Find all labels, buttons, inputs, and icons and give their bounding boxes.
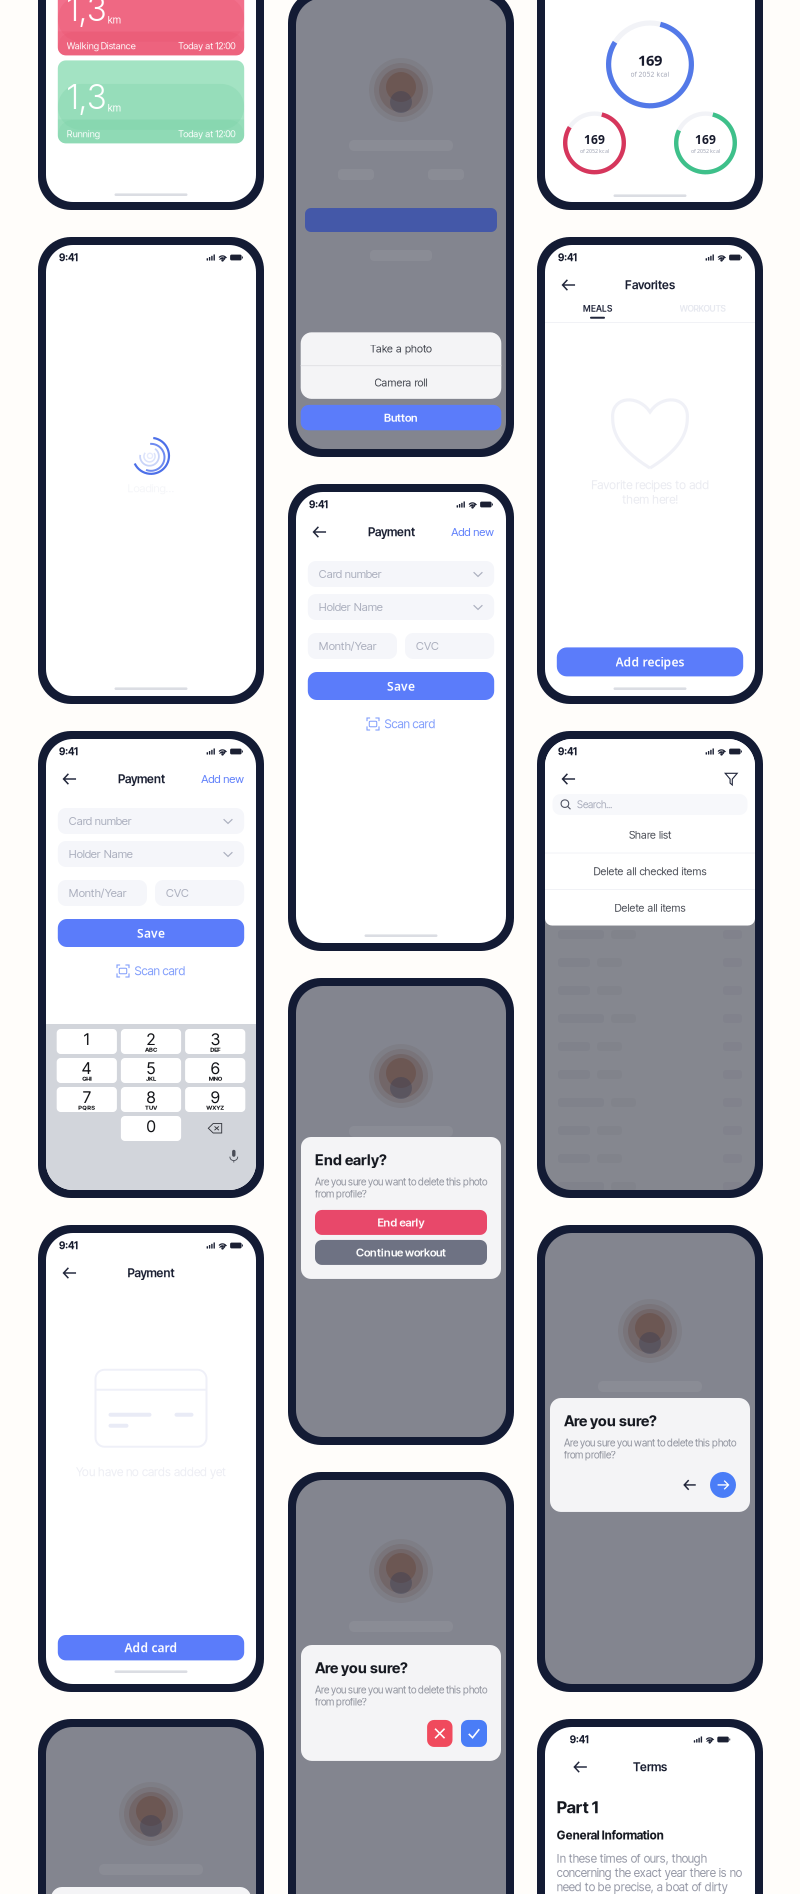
staticText: Payment (127, 1266, 174, 1280)
button[interactable]: MEALS (545, 300, 650, 322)
staticText: Add new (451, 525, 494, 539)
staticText: MNO (209, 1075, 222, 1082)
staticText: Terms (633, 1760, 667, 1774)
staticText: of 2052 kcal (580, 147, 609, 154)
button[interactable]: Back (58, 768, 82, 790)
staticText: Favorite recipes to add them here! (591, 478, 709, 507)
staticText: Card number (69, 814, 132, 828)
staticText: Add card (124, 1640, 177, 1656)
button[interactable]: Add recipes (557, 647, 743, 676)
button[interactable]: 6 (185, 1058, 245, 1083)
staticText: Share list (629, 828, 671, 841)
button[interactable]: Scan card (116, 954, 185, 980)
button[interactable]: Filter (719, 768, 743, 790)
staticText: km (108, 102, 121, 114)
button[interactable]: Save (58, 919, 244, 947)
staticText: Add new (201, 772, 244, 786)
button[interactable]: Add card (58, 1635, 244, 1660)
button[interactable]: Continue (710, 1472, 736, 1498)
button[interactable]: 8 (121, 1087, 181, 1112)
button[interactable]: Back (557, 274, 581, 296)
button[interactable]: Cancel (427, 1720, 452, 1747)
staticText: Today at 12:00 (178, 40, 235, 51)
button[interactable]: Continue workout (315, 1240, 487, 1265)
staticText: Delete all checked items (593, 865, 706, 878)
button[interactable]: Share list (545, 817, 755, 852)
button[interactable]: 2 (121, 1029, 181, 1054)
button[interactable]: Back (308, 521, 332, 543)
staticText: Holder Name (319, 600, 383, 614)
staticText: km (108, 14, 121, 26)
staticText: 1,3 (67, 0, 107, 29)
staticText: Scan card (134, 964, 185, 978)
button[interactable]: 0 (121, 1116, 181, 1141)
staticText: Favorites (625, 278, 675, 292)
staticText: DEF (210, 1046, 220, 1053)
staticText: TUV (145, 1104, 157, 1111)
staticText: MEALS (583, 303, 612, 314)
staticText: Camera roll (374, 376, 427, 389)
button[interactable]: Delete (185, 1116, 245, 1141)
staticText: 169 (695, 131, 716, 147)
button[interactable]: Back (569, 1756, 593, 1778)
staticText: Button (384, 411, 418, 424)
button[interactable]: Delete all items (545, 890, 755, 925)
staticText: Month/Year (319, 639, 377, 653)
staticText: 169 (584, 131, 605, 147)
button[interactable]: Take a photo (301, 332, 501, 365)
staticText: 2 (146, 1030, 155, 1049)
staticText: 5 (146, 1059, 155, 1078)
staticText: Card number (319, 567, 382, 581)
staticText: GHI (82, 1075, 91, 1082)
button[interactable]: 9 (185, 1087, 245, 1112)
staticText: General Information (557, 1828, 664, 1842)
button[interactable]: Scan card (366, 707, 435, 733)
staticText: 0 (146, 1117, 155, 1136)
button[interactable]: 7 (57, 1087, 117, 1112)
button[interactable]: Button (301, 405, 501, 430)
staticText: 9:41 (558, 251, 577, 264)
staticText: In these times of ours, though concernin… (557, 1851, 742, 1894)
staticText: Part 1 (557, 1797, 599, 1817)
staticText: Month/Year (69, 886, 127, 900)
staticText: PQRS (78, 1104, 95, 1111)
staticText: Running (67, 128, 100, 139)
button[interactable]: 4 (57, 1058, 117, 1083)
staticText: Are you sure? (315, 1659, 408, 1677)
staticText: Payment (118, 772, 165, 786)
staticText: Are you sure you want to delete this pho… (315, 1176, 487, 1200)
staticText: End early? (315, 1151, 387, 1169)
staticText: 3 (211, 1030, 220, 1049)
staticText: Add recipes (615, 654, 684, 670)
button[interactable]: Back (557, 768, 581, 790)
staticText: Are you sure you want to delete this pho… (315, 1684, 487, 1708)
staticText: of 2052 kcal (630, 70, 669, 79)
button[interactable]: 3 (185, 1029, 245, 1054)
button[interactable]: Camera roll (301, 366, 501, 399)
button[interactable]: WORKOUTS (650, 300, 755, 322)
button[interactable]: 5 (121, 1058, 181, 1083)
staticText: 9 (211, 1088, 220, 1107)
button[interactable]: Back (680, 1475, 700, 1495)
staticText: You have no cards added yet (76, 1465, 226, 1479)
button[interactable]: 1 (57, 1029, 117, 1054)
button[interactable]: Delete all checked items (545, 853, 755, 889)
staticText: 9:41 (59, 745, 78, 758)
staticText: 9:41 (59, 1239, 78, 1252)
button[interactable]: Dictate (228, 1149, 239, 1162)
button[interactable]: End early (315, 1210, 487, 1235)
button[interactable]: Add new (451, 521, 494, 543)
button[interactable]: Confirm (461, 1720, 487, 1747)
staticText: Save (387, 678, 415, 694)
staticText: CVC (416, 639, 439, 653)
button[interactable]: Save (308, 672, 494, 700)
button[interactable]: Add new (201, 768, 244, 790)
staticText: Scan card (384, 717, 435, 731)
button[interactable]: Back (58, 1262, 82, 1284)
staticText: CVC (166, 886, 189, 900)
staticText: of 2052 kcal (691, 147, 720, 154)
staticText: ABC (145, 1046, 157, 1053)
staticText: 1,3 (67, 77, 107, 117)
staticText: 9:41 (309, 498, 328, 511)
staticText: Save (137, 925, 165, 941)
